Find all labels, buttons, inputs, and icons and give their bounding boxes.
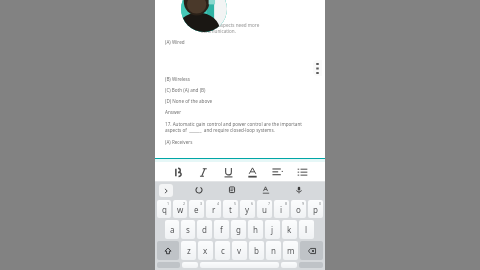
button[interactable]: w <box>173 200 187 218</box>
button[interactable]: Alignment <box>267 163 287 181</box>
staticText: 8 <box>285 201 288 206</box>
button[interactable]: y <box>240 200 255 218</box>
staticText: 6 <box>251 201 254 206</box>
button[interactable]: . <box>281 262 297 268</box>
staticText: d <box>202 224 207 235</box>
button[interactable]: Expand toolbar <box>159 184 173 197</box>
staticText: a <box>170 224 175 235</box>
staticText: p <box>313 204 318 215</box>
staticText: (C) Both (A) and (B) <box>165 87 206 93</box>
staticText: (B) Wireless <box>165 76 190 82</box>
staticText: z <box>187 245 191 256</box>
staticText: 17. Automatic gain control and power con… <box>165 121 315 133</box>
staticText: 5 <box>234 201 237 206</box>
staticText: v <box>237 245 242 256</box>
staticText: i <box>280 204 283 215</box>
button[interactable]: Bold <box>168 163 188 181</box>
staticText: l <box>305 224 308 235</box>
staticText: u <box>262 204 267 215</box>
staticText: r <box>212 204 216 215</box>
staticText: k <box>287 224 292 235</box>
button[interactable]: Voice input <box>291 183 307 197</box>
staticText: Answer <box>165 109 182 115</box>
button[interactable]: j <box>265 220 280 239</box>
button[interactable]: i <box>274 200 289 218</box>
button[interactable]: m <box>283 241 298 260</box>
button[interactable]: Clipboard <box>191 183 207 197</box>
staticText: 2 <box>183 201 186 206</box>
button[interactable]: h <box>248 220 263 239</box>
button[interactable]: t <box>223 200 238 218</box>
staticText: n <box>271 245 276 256</box>
button[interactable]: b <box>249 241 264 260</box>
staticText: (A) Receivers <box>165 139 193 145</box>
staticText: q <box>162 204 167 215</box>
staticText: c <box>221 245 225 256</box>
staticText: 0 <box>319 201 322 206</box>
staticText: e <box>194 204 199 215</box>
staticText: b <box>254 245 259 256</box>
button[interactable]: Scroll <box>313 60 322 76</box>
button[interactable]: Italic <box>193 163 213 181</box>
button[interactable]: Emoji <box>224 183 240 197</box>
button[interactable]: o <box>291 200 306 218</box>
button[interactable]: c <box>215 241 230 260</box>
button[interactable] <box>200 262 279 268</box>
staticText: w <box>177 204 184 215</box>
button[interactable]: d <box>197 220 212 239</box>
button[interactable]: n <box>266 241 281 260</box>
button[interactable]: , <box>182 262 198 268</box>
button[interactable]: k <box>282 220 297 239</box>
staticText: m <box>287 245 295 256</box>
button[interactable]: Shift <box>157 241 179 260</box>
staticText: j <box>271 224 274 235</box>
button[interactable]: Backspace <box>300 241 323 260</box>
button[interactable]: u <box>257 200 272 218</box>
button[interactable]: z <box>181 241 196 260</box>
staticText: …oding aspects need more communication. <box>201 22 260 34</box>
staticText: (D) None of the above <box>165 98 213 104</box>
staticText: (A) Wired <box>165 39 185 45</box>
staticText: g <box>236 224 241 235</box>
staticText: 7 <box>268 201 271 206</box>
button[interactable]: q <box>157 200 171 218</box>
button[interactable]: l <box>299 220 314 239</box>
staticText: t <box>229 204 232 215</box>
button[interactable]: List <box>292 163 312 181</box>
button[interactable]: Translate <box>258 183 274 197</box>
button[interactable]: a <box>165 220 179 239</box>
button[interactable]: Video call participant <box>181 0 227 32</box>
staticText: y <box>245 204 250 215</box>
button[interactable]: f <box>214 220 229 239</box>
button[interactable]: Text color <box>242 163 262 181</box>
staticText: 9 <box>302 201 305 206</box>
button[interactable]: r <box>206 200 221 218</box>
button[interactable]: x <box>198 241 213 260</box>
staticText: 1 <box>167 201 170 206</box>
staticText: h <box>253 224 258 235</box>
staticText: x <box>203 245 208 256</box>
staticText: f <box>220 224 223 235</box>
staticText: o <box>296 204 301 215</box>
button[interactable]: v <box>232 241 247 260</box>
button[interactable]: g <box>231 220 246 239</box>
button[interactable]: s <box>181 220 195 239</box>
button[interactable]: e <box>189 200 204 218</box>
button[interactable]: Underline <box>218 163 238 181</box>
button[interactable]: p <box>308 200 323 218</box>
staticText: 3 <box>200 201 203 206</box>
staticText: s <box>186 224 190 235</box>
staticText: 4 <box>217 201 220 206</box>
